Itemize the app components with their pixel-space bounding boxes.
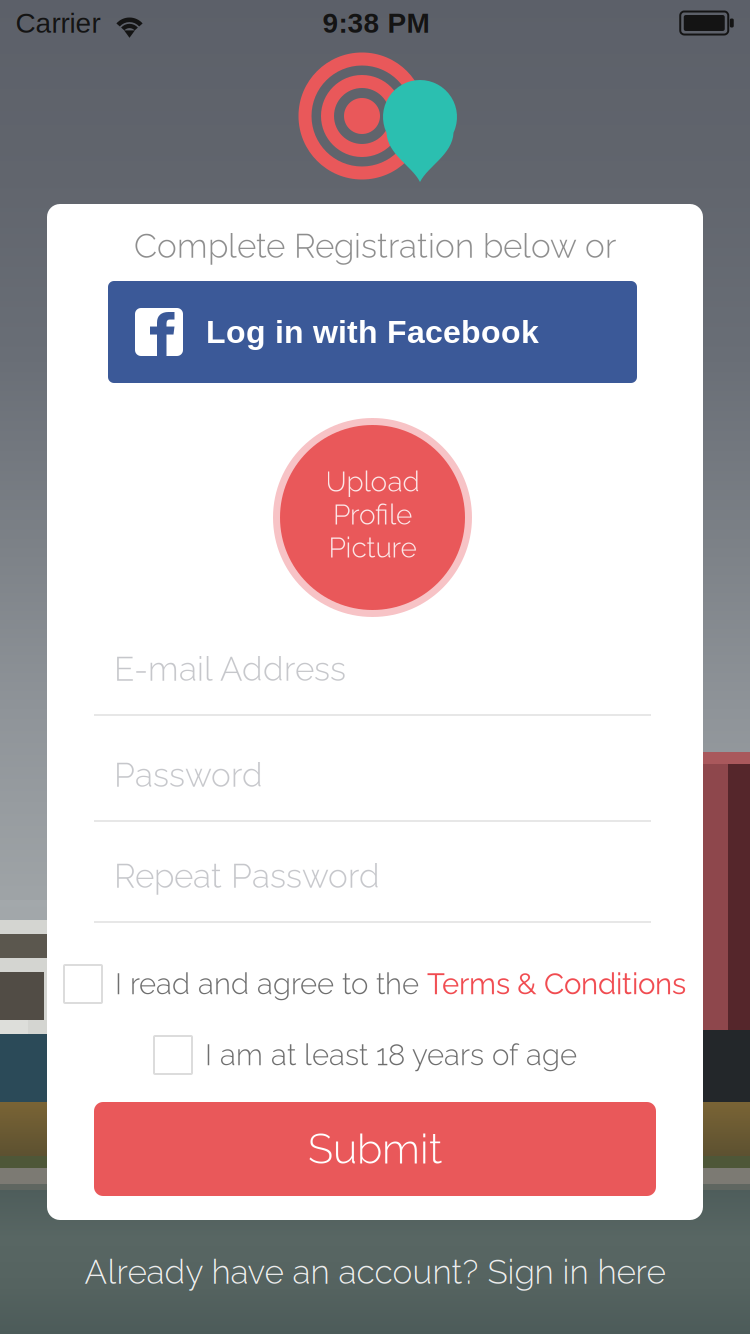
button[interactable]: I read and agree to the xyxy=(64,962,690,1006)
staticText: Carrier xyxy=(15,7,100,39)
staticText: Already have an account? Sign in here xyxy=(84,1252,665,1291)
staticText: E-mail Address xyxy=(114,649,346,688)
staticText: I am at least 18 years of age xyxy=(205,1038,577,1072)
staticText: Upload xyxy=(325,465,419,498)
staticText: Profile xyxy=(333,498,412,531)
staticText: Repeat Password xyxy=(114,856,380,895)
staticText: Password xyxy=(114,755,263,794)
button[interactable]: Log in with Facebook xyxy=(108,281,637,383)
button[interactable]: Submit xyxy=(94,1102,656,1196)
staticText: 9:38 PM xyxy=(322,7,429,39)
button[interactable]: Already have an account? Sign in here xyxy=(75,1242,675,1302)
button[interactable]: I am at least 18 years of age xyxy=(154,1033,624,1077)
staticText: Complete Registration below or xyxy=(134,226,616,265)
staticText: I read and agree to the xyxy=(115,967,427,1001)
staticText: Log in with Facebook xyxy=(206,314,539,350)
staticText: Terms & Conditions xyxy=(427,967,686,1001)
button[interactable]: Upload xyxy=(273,418,472,617)
staticText: Picture xyxy=(328,531,416,564)
staticText: Submit xyxy=(308,1125,442,1173)
